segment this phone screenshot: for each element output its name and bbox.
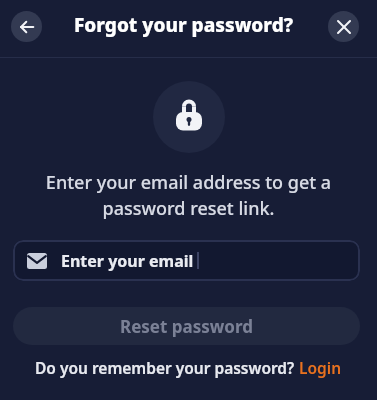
button[interactable]: Enter your email [13, 240, 360, 281]
button[interactable]: Login [295, 357, 342, 378]
staticText: Reset password [120, 315, 253, 338]
staticText: Do you remember your password? [35, 357, 295, 378]
button[interactable]: Reset password [13, 307, 360, 345]
staticText: Enter your email [61, 250, 194, 272]
button[interactable] [328, 11, 359, 42]
staticText: Login [295, 357, 342, 378]
button[interactable] [11, 11, 42, 42]
staticText: Enter your email address to get a passwo… [0, 170, 377, 221]
staticText: Forgot your password? [74, 12, 294, 38]
